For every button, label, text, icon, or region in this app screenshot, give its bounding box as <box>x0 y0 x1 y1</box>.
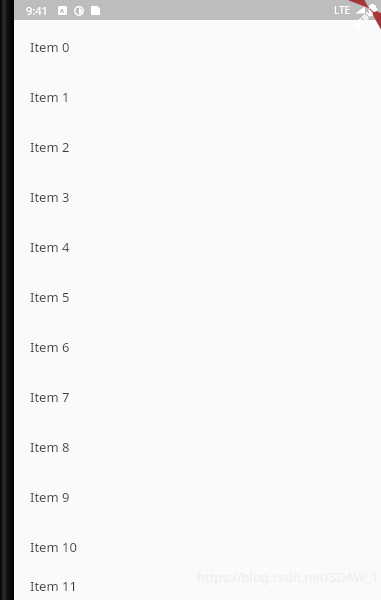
staticText: Item 1 <box>30 88 70 106</box>
staticText: 9:41 <box>26 3 48 18</box>
staticText: Item 0 <box>30 38 70 56</box>
button[interactable]: Item 7 <box>14 372 381 422</box>
button[interactable]: Item 1 <box>14 72 381 122</box>
staticText: Item 10 <box>30 538 77 556</box>
button[interactable]: Item 2 <box>14 122 381 172</box>
staticText: Item 6 <box>30 338 70 356</box>
staticText: Item 3 <box>30 188 70 206</box>
button[interactable]: Item 4 <box>14 222 381 272</box>
staticText: Item 11 <box>30 577 77 595</box>
staticText: Item 8 <box>30 438 70 456</box>
staticText: DEBUG <box>351 2 380 31</box>
staticText: Item 4 <box>30 238 70 256</box>
button[interactable]: Item 8 <box>14 422 381 472</box>
staticText: LTE <box>334 3 351 17</box>
staticText: Item 9 <box>30 488 70 506</box>
staticText: A <box>60 7 65 15</box>
button[interactable]: Item 9 <box>14 472 381 522</box>
button[interactable]: Item 5 <box>14 272 381 322</box>
staticText: https://blog.csdn.net/SDAW_1 <box>197 568 379 586</box>
button[interactable]: Item 11 <box>14 572 381 600</box>
other: Debug build banner <box>335 0 381 46</box>
button[interactable]: Item 10 <box>14 522 381 572</box>
button[interactable]: Item 6 <box>14 322 381 372</box>
button[interactable]: Item 3 <box>14 172 381 222</box>
staticText: Item 5 <box>30 288 70 306</box>
staticText: Item 7 <box>30 388 70 406</box>
staticText: Item 2 <box>30 138 70 156</box>
button[interactable]: Item 0 <box>14 22 381 72</box>
